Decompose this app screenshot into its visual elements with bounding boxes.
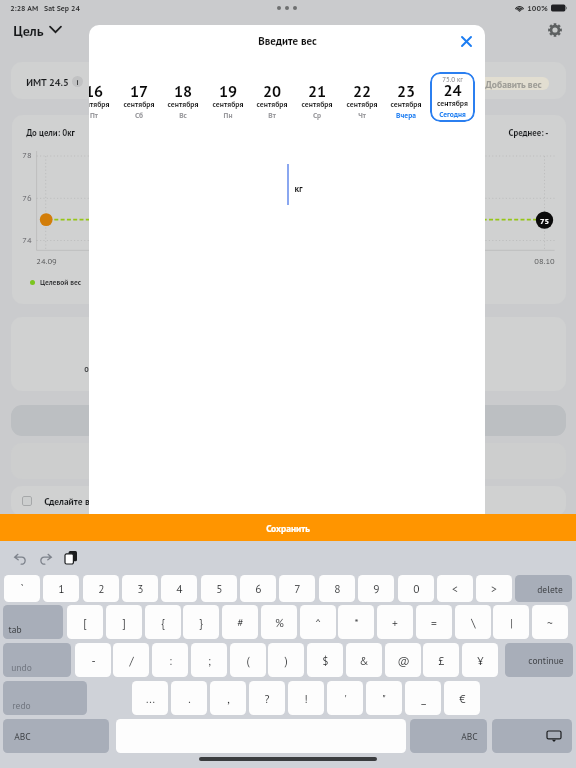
staticText: €	[459, 691, 466, 706]
button[interactable]: 8	[319, 575, 355, 602]
button[interactable]: }	[183, 605, 219, 639]
staticText: Пт	[89, 110, 118, 120]
button[interactable]: redo	[3, 681, 87, 715]
staticText: ?	[264, 691, 270, 706]
staticText: @	[397, 653, 410, 668]
button[interactable]: 1	[43, 575, 79, 602]
button[interactable]: 20	[248, 80, 296, 136]
button[interactable]: 0	[398, 575, 434, 602]
button[interactable]: €	[444, 681, 480, 715]
button[interactable]: 75.0 кг	[430, 72, 475, 122]
staticText: 24	[430, 80, 475, 101]
button[interactable]: :	[152, 643, 188, 677]
button[interactable]: 23	[382, 80, 430, 136]
staticText: 17	[115, 81, 163, 102]
button[interactable]: &	[346, 643, 382, 677]
button[interactable]: 3	[122, 575, 158, 602]
button[interactable]: >	[476, 575, 512, 602]
staticText: 74	[22, 234, 32, 245]
button[interactable]: ;	[191, 643, 227, 677]
staticText: До цели: 0кг	[26, 127, 75, 138]
button[interactable]: 17	[115, 80, 163, 136]
button[interactable]: tab	[3, 605, 63, 639]
button[interactable]: 19	[204, 80, 252, 136]
staticText: Пн	[204, 110, 252, 120]
button[interactable]: ...	[132, 681, 168, 715]
staticText: 3	[137, 581, 144, 596]
staticText: )	[284, 653, 288, 668]
staticText: >	[491, 581, 497, 596]
button[interactable]: Undo	[10, 548, 30, 568]
staticText: *	[354, 615, 359, 630]
button[interactable]: ~	[532, 605, 568, 639]
button[interactable]: 2	[83, 575, 119, 602]
button[interactable]: ^	[300, 605, 336, 639]
button[interactable]: =	[416, 605, 452, 639]
button[interactable]: 9	[358, 575, 394, 602]
button[interactable]: ?	[249, 681, 285, 715]
button[interactable]: *	[338, 605, 374, 639]
button[interactable]: +	[377, 605, 413, 639]
staticText: 2:28 AM Sat Sep 24	[10, 3, 80, 13]
button[interactable]: 16	[89, 80, 118, 136]
button[interactable]: Цель	[13, 22, 61, 40]
button[interactable]: $	[307, 643, 343, 677]
staticText: \	[471, 615, 476, 630]
button[interactable]: delete	[515, 575, 572, 602]
button[interactable]: |	[493, 605, 529, 639]
button[interactable]: `	[4, 575, 40, 602]
button[interactable]: .	[171, 681, 207, 715]
button[interactable]: 18	[159, 80, 207, 136]
staticText: '	[344, 691, 347, 706]
button[interactable]: [	[67, 605, 103, 639]
button[interactable]: /	[113, 643, 149, 677]
button[interactable]: )	[268, 643, 304, 677]
button[interactable]: _	[405, 681, 441, 715]
button[interactable]: ABC	[3, 719, 109, 753]
staticText: 22	[338, 81, 386, 102]
staticText: :	[169, 653, 172, 668]
button[interactable]: %	[261, 605, 297, 639]
button[interactable]: Redo	[35, 548, 55, 568]
button[interactable]: "	[366, 681, 402, 715]
staticText: +	[392, 615, 398, 630]
button[interactable]: Hide keyboard	[492, 719, 572, 753]
button[interactable]: Paste	[61, 547, 81, 567]
staticText: сентября	[338, 99, 386, 109]
button[interactable]: {	[145, 605, 181, 639]
button[interactable]: continue	[505, 643, 573, 677]
button[interactable]: \	[455, 605, 491, 639]
button[interactable]: Сохранить	[0, 514, 576, 541]
button[interactable]: #	[222, 605, 258, 639]
staticText: 100%	[527, 3, 548, 13]
button[interactable]: (	[230, 643, 266, 677]
staticText: redo	[12, 699, 31, 711]
button[interactable]: Settings	[544, 19, 566, 41]
staticText: Ср	[293, 110, 341, 120]
staticText: |	[510, 615, 513, 630]
button[interactable]: ]	[106, 605, 142, 639]
staticText: }	[199, 615, 203, 630]
button[interactable]: 5	[201, 575, 237, 602]
button[interactable]: ABC	[410, 719, 487, 753]
button[interactable]: undo	[3, 643, 71, 677]
button[interactable]: Close	[456, 31, 476, 51]
button[interactable]: <	[437, 575, 473, 602]
button[interactable]: '	[327, 681, 363, 715]
button[interactable]: ,	[210, 681, 246, 715]
staticText: _	[421, 691, 426, 706]
button[interactable]: 6	[240, 575, 276, 602]
button[interactable]: !	[288, 681, 324, 715]
button[interactable]: 7	[279, 575, 315, 602]
button[interactable]: 21	[293, 80, 341, 136]
button[interactable]: Добавить вес	[478, 77, 549, 90]
button[interactable]: 4	[161, 575, 197, 602]
button[interactable]: ¥	[462, 643, 498, 677]
staticText: ABC	[461, 730, 478, 742]
button[interactable]: 22	[338, 80, 386, 136]
button[interactable]: -	[75, 643, 111, 677]
button[interactable]: £	[423, 643, 459, 677]
button[interactable]: @	[385, 643, 421, 677]
staticText: сентября	[382, 99, 430, 109]
